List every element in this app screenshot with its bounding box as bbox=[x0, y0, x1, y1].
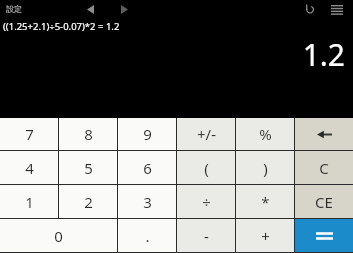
button[interactable]: 4 bbox=[0, 151, 58, 184]
staticText: 0 bbox=[54, 226, 63, 246]
button[interactable]: . bbox=[118, 219, 176, 252]
staticText: 4 bbox=[25, 158, 34, 178]
staticText: 3 bbox=[143, 192, 152, 212]
button[interactable]: 設定 bbox=[0, 0, 28, 18]
button[interactable]: Undo bbox=[299, 0, 321, 18]
button[interactable]: 7 bbox=[0, 118, 58, 150]
button[interactable]: 8 bbox=[59, 118, 117, 150]
staticText: C bbox=[319, 158, 329, 178]
button[interactable]: C bbox=[295, 151, 353, 184]
button[interactable]: + bbox=[236, 219, 294, 252]
staticText: ((1.25+2.1)÷5-0.07)*2 = 1.2 bbox=[3, 20, 120, 33]
staticText: ) bbox=[263, 158, 268, 178]
button[interactable]: 3 bbox=[118, 185, 176, 218]
staticText: 9 bbox=[143, 124, 152, 144]
staticText: 1.2 bbox=[302, 34, 345, 75]
button[interactable]: 9 bbox=[118, 118, 176, 150]
button[interactable]: +/- bbox=[177, 118, 235, 150]
button[interactable]: CE bbox=[295, 185, 353, 218]
staticText: 8 bbox=[84, 124, 93, 144]
button[interactable]: 6 bbox=[118, 151, 176, 184]
staticText: CE bbox=[315, 192, 333, 212]
staticText: ( bbox=[204, 158, 209, 178]
button[interactable]: Next bbox=[113, 0, 135, 18]
staticText: + bbox=[261, 226, 270, 246]
staticText: ÷ bbox=[202, 192, 211, 212]
staticText: 6 bbox=[143, 158, 152, 178]
button[interactable]: ( bbox=[177, 151, 235, 184]
button[interactable]: Backspace bbox=[295, 118, 353, 150]
button[interactable]: 0 bbox=[0, 219, 117, 252]
staticText: - bbox=[204, 226, 209, 246]
staticText: . bbox=[145, 226, 150, 246]
staticText: 設定 bbox=[6, 4, 22, 14]
button[interactable]: Equals bbox=[295, 219, 353, 252]
button[interactable]: 5 bbox=[59, 151, 117, 184]
staticText: 5 bbox=[84, 158, 93, 178]
staticText: * bbox=[261, 192, 270, 212]
button[interactable]: Previous bbox=[79, 0, 101, 18]
staticText: +/- bbox=[197, 124, 216, 144]
staticText: % bbox=[259, 124, 272, 144]
staticText: 1 bbox=[25, 192, 34, 212]
button[interactable]: ÷ bbox=[177, 185, 235, 218]
button[interactable]: ) bbox=[236, 151, 294, 184]
button[interactable]: * bbox=[236, 185, 294, 218]
button[interactable]: Menu bbox=[325, 0, 349, 18]
button[interactable]: % bbox=[236, 118, 294, 150]
staticText: 7 bbox=[25, 124, 34, 144]
button[interactable]: - bbox=[177, 219, 235, 252]
staticText: 2 bbox=[84, 192, 93, 212]
button[interactable]: 1 bbox=[0, 185, 58, 218]
button[interactable]: 2 bbox=[59, 185, 117, 218]
